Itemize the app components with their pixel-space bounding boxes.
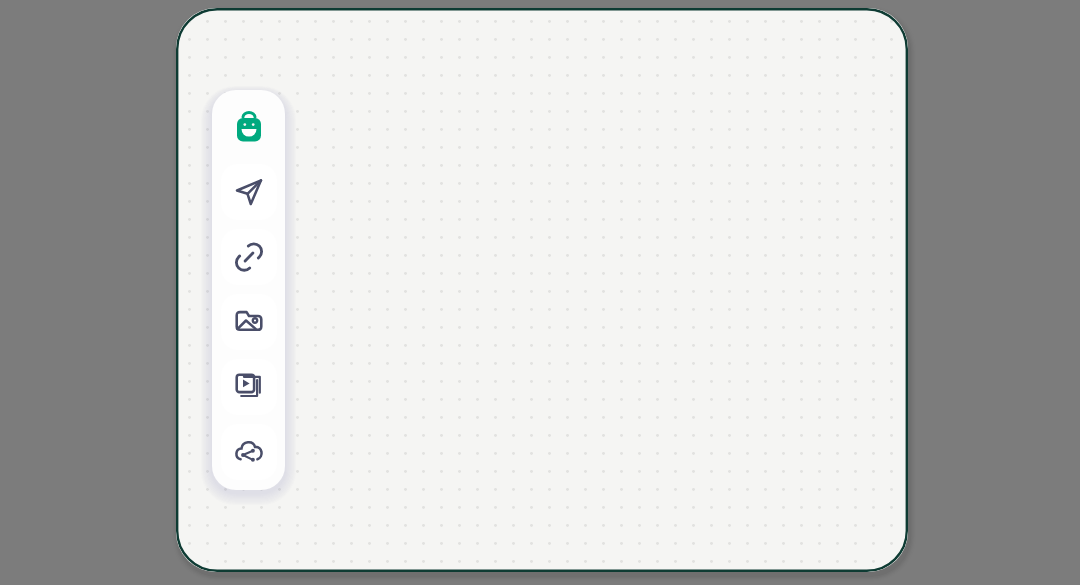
button[interactable]: Link (221, 229, 277, 285)
button[interactable]: Image (221, 294, 277, 350)
button[interactable]: Send (221, 164, 277, 220)
button[interactable]: Cloud share (221, 424, 277, 480)
button[interactable]: Shop (221, 99, 277, 155)
button[interactable]: Video (221, 359, 277, 415)
